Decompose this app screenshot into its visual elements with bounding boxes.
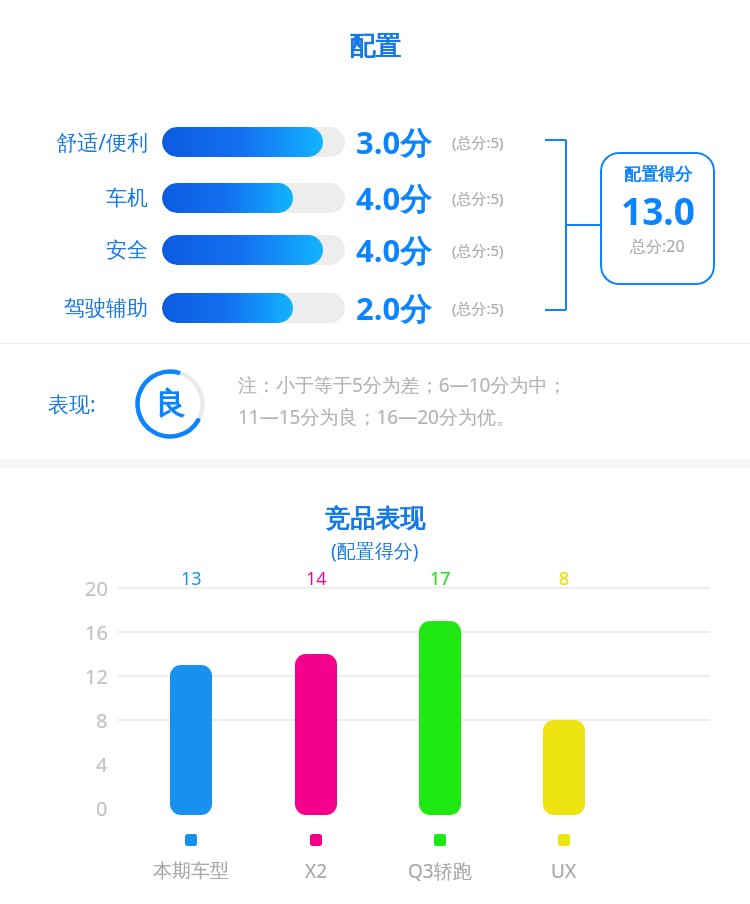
staticText: UX	[551, 858, 577, 884]
button[interactable]: X2	[254, 856, 378, 886]
staticText: (配置得分)	[331, 538, 419, 564]
button[interactable]: 安全	[0, 233, 148, 267]
staticText: 本期车型	[153, 859, 229, 883]
staticText: X2	[305, 858, 328, 884]
button[interactable]: UX	[502, 856, 626, 886]
staticText: 总分:20	[630, 235, 685, 257]
staticText: 16	[85, 619, 108, 646]
staticText: 0	[96, 795, 108, 822]
button[interactable]: 驾驶辅助	[0, 291, 148, 325]
staticText: 13	[181, 566, 202, 591]
staticText: 17	[430, 566, 451, 591]
staticText: (总分:5)	[452, 188, 504, 208]
button[interactable]: 表现评级 良	[135, 369, 205, 439]
staticText: 良	[155, 385, 185, 423]
staticText: 4.0分	[356, 177, 432, 219]
button[interactable]: Q3轿跑	[378, 856, 502, 886]
staticText: 配置	[349, 30, 401, 63]
button[interactable]: 本期车型	[129, 856, 253, 886]
staticText: 11—15分为良；16—20分为优。	[238, 404, 515, 430]
staticText: 表现:	[48, 390, 96, 419]
staticText: 4	[96, 751, 108, 778]
staticText: (总分:5)	[452, 132, 504, 152]
staticText: Q3轿跑	[408, 858, 472, 884]
staticText: 舒适/便利	[56, 128, 148, 157]
staticText: 12	[85, 663, 108, 690]
button[interactable]: 配置得分	[600, 152, 715, 285]
staticText: 配置得分	[624, 164, 692, 185]
staticText: 4.0分	[356, 229, 432, 271]
staticText: 驾驶辅助	[64, 295, 148, 321]
staticText: 13.0	[621, 185, 695, 235]
button[interactable]: 舒适/便利	[0, 125, 148, 159]
staticText: 注：小于等于5分为差；6—10分为中；	[238, 372, 567, 398]
staticText: 2.0分	[356, 287, 432, 329]
staticText: 20	[85, 575, 108, 602]
staticText: 安全	[106, 237, 148, 263]
staticText: 车机	[106, 185, 148, 211]
staticText: 8	[559, 566, 570, 591]
staticText: 14	[306, 566, 327, 591]
staticText: 3.0分	[356, 121, 432, 163]
staticText: (总分:5)	[452, 298, 504, 318]
staticText: 竞品表现	[325, 503, 425, 534]
staticText: (总分:5)	[452, 240, 504, 260]
staticText: 8	[96, 707, 108, 734]
button[interactable]: 车机	[0, 181, 148, 215]
button[interactable]: 表现:	[48, 387, 96, 421]
